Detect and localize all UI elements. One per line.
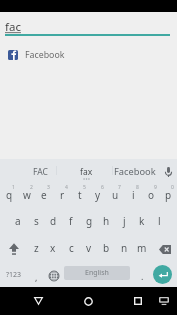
- staticText: f: [69, 214, 73, 228]
- staticText: h: [103, 214, 110, 228]
- staticText: n: [121, 241, 128, 255]
- staticText: r: [60, 188, 65, 202]
- staticText: fax: [80, 166, 93, 178]
- staticText: 6: [101, 184, 104, 191]
- staticText: 4: [65, 184, 68, 191]
- staticText: i: [132, 188, 135, 202]
- button[interactable]: Shift: [0, 236, 27, 262]
- button[interactable]: z: [27, 235, 45, 261]
- button[interactable]: g: [80, 208, 98, 234]
- staticText: 9: [154, 184, 157, 191]
- button[interactable]: r: [53, 182, 71, 208]
- staticText: English: [85, 268, 109, 278]
- staticText: o: [148, 188, 155, 202]
- button[interactable]: u: [106, 182, 124, 208]
- staticText: 8: [136, 184, 139, 191]
- button[interactable]: a: [9, 208, 27, 234]
- button[interactable]: b: [97, 235, 115, 261]
- button[interactable]: ,: [28, 262, 45, 287]
- button[interactable]: d: [44, 208, 62, 234]
- button[interactable]: t: [71, 182, 89, 208]
- button[interactable]: k: [133, 208, 151, 234]
- staticText: t: [78, 188, 82, 202]
- button[interactable]: s: [27, 208, 45, 234]
- staticText: x: [50, 241, 56, 255]
- staticText: j: [123, 214, 126, 228]
- button[interactable]: fax: [57, 159, 116, 184]
- button[interactable]: Voice input: [158, 159, 177, 184]
- button[interactable]: n: [115, 235, 133, 261]
- staticText: q: [6, 188, 13, 202]
- staticText: m: [137, 241, 147, 255]
- button[interactable]: q: [0, 182, 18, 208]
- staticText: a: [15, 214, 21, 228]
- button[interactable]: English: [64, 266, 130, 280]
- button[interactable]: o: [142, 182, 160, 208]
- button[interactable]: FAC: [25, 159, 56, 184]
- staticText: Facebook: [114, 165, 156, 178]
- staticText: g: [86, 214, 93, 228]
- staticText: .: [141, 270, 144, 282]
- button[interactable]: Hide keyboard: [153, 287, 175, 315]
- staticText: w: [23, 188, 31, 202]
- button[interactable]: Enter: [153, 265, 172, 284]
- button[interactable]: f: [62, 208, 80, 234]
- button[interactable]: w: [18, 182, 36, 208]
- staticText: s: [34, 214, 39, 228]
- staticText: 7: [118, 184, 121, 191]
- staticText: 2: [30, 184, 33, 191]
- button[interactable]: e: [35, 182, 53, 208]
- staticText: k: [139, 214, 145, 228]
- staticText: v: [86, 241, 92, 255]
- staticText: c: [69, 241, 74, 255]
- staticText: ,: [35, 271, 38, 283]
- button[interactable]: j: [115, 208, 133, 234]
- staticText: 3: [47, 184, 50, 191]
- button[interactable]: i: [124, 182, 142, 208]
- button[interactable]: Back: [27, 287, 49, 315]
- staticText: y: [95, 188, 101, 202]
- button[interactable]: ?123: [0, 262, 28, 287]
- staticText: d: [50, 214, 57, 228]
- staticText: 1: [12, 184, 15, 191]
- staticText: z: [34, 241, 39, 255]
- staticText: 5: [83, 184, 86, 191]
- staticText: FAC: [33, 166, 48, 178]
- button[interactable]: Recent apps: [127, 287, 149, 315]
- button[interactable]: m: [133, 235, 151, 261]
- staticText: ?123: [6, 270, 22, 280]
- button[interactable]: p: [159, 182, 177, 208]
- button[interactable]: Change language: [45, 263, 62, 288]
- button[interactable]: v: [80, 235, 98, 261]
- button[interactable]: x: [44, 235, 62, 261]
- staticText: u: [112, 188, 119, 202]
- button[interactable]: Backspace: [151, 236, 177, 262]
- staticText: l: [158, 214, 161, 228]
- staticText: b: [103, 241, 110, 255]
- button[interactable]: Facebook: [113, 159, 157, 184]
- button[interactable]: Facebook: [0, 45, 177, 65]
- staticText: fac: [5, 19, 21, 35]
- button[interactable]: Home: [77, 287, 99, 315]
- staticText: p: [165, 188, 172, 202]
- button[interactable]: .: [134, 262, 151, 287]
- button[interactable]: h: [97, 208, 115, 234]
- staticText: e: [41, 188, 47, 202]
- button[interactable]: c: [62, 235, 80, 261]
- button[interactable]: l: [150, 208, 168, 234]
- staticText: Facebook: [25, 49, 65, 61]
- button[interactable]: y: [89, 182, 107, 208]
- staticText: 0: [171, 184, 174, 191]
